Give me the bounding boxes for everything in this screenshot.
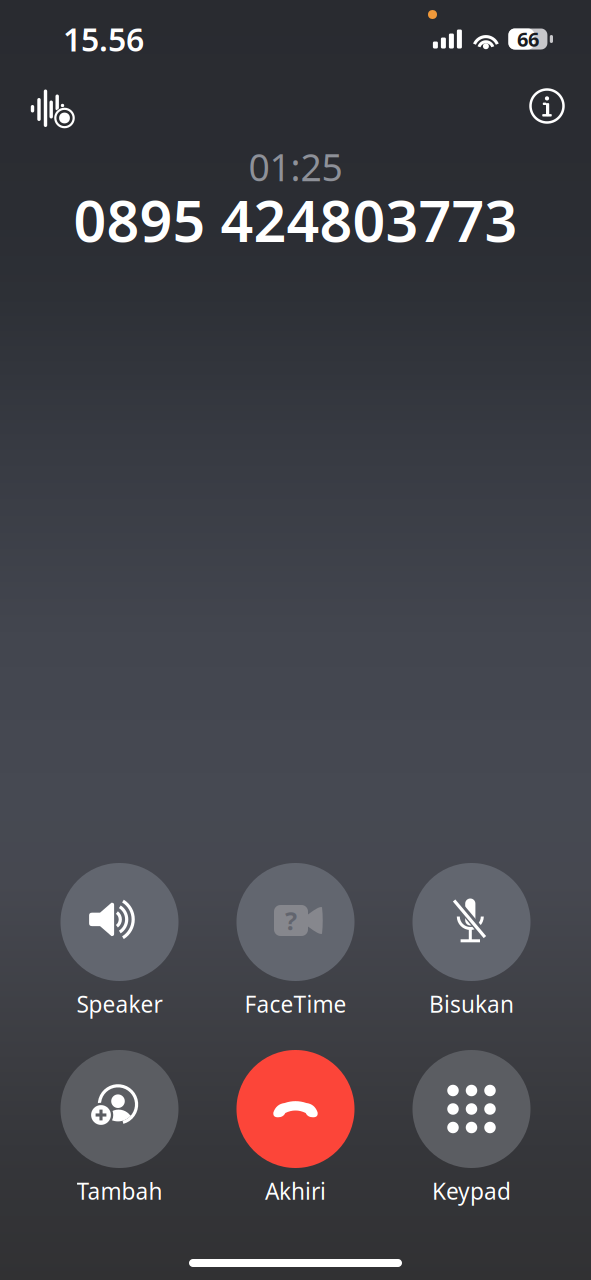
staticText: Akhiri bbox=[265, 1176, 326, 1206]
staticText: Tambah bbox=[76, 1176, 162, 1206]
staticText: Speaker bbox=[76, 989, 162, 1019]
button[interactable]: Call recording bbox=[26, 89, 74, 131]
staticText: Bisukan bbox=[429, 989, 514, 1019]
button[interactable]: ? bbox=[207, 863, 383, 1015]
staticText: 0895 424803773 bbox=[73, 182, 517, 258]
staticText: 01:25 bbox=[248, 142, 342, 192]
button[interactable]: Bisukan bbox=[383, 863, 559, 1015]
button[interactable]: Speaker bbox=[31, 863, 207, 1015]
staticText: 66 bbox=[517, 26, 539, 52]
staticText: ? bbox=[285, 904, 297, 937]
staticText: 15.56 bbox=[63, 18, 144, 60]
button[interactable]: Tambah bbox=[31, 1050, 207, 1202]
staticText: Keypad bbox=[432, 1176, 511, 1206]
staticText: FaceTime bbox=[244, 989, 346, 1019]
button[interactable]: Akhiri bbox=[207, 1050, 383, 1202]
button[interactable]: Keypad bbox=[383, 1050, 559, 1202]
button[interactable]: Call info bbox=[525, 88, 569, 132]
